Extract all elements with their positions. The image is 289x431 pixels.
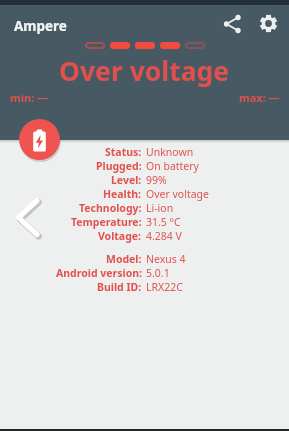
- staticText: 5.0.1: [146, 266, 170, 280]
- staticText: min: —: [10, 90, 49, 105]
- staticText: Plugged:: [96, 159, 142, 173]
- staticText: LRX22C: [146, 280, 183, 294]
- staticText: Model:: [106, 252, 142, 266]
- staticText: On battery: [146, 159, 199, 173]
- staticText: Build ID:: [97, 280, 142, 294]
- button[interactable]: [10, 193, 46, 243]
- staticText: 31.5 °C: [146, 215, 181, 229]
- staticText: Over voltage: [59, 53, 230, 89]
- staticText: Level:: [111, 173, 142, 187]
- staticText: max: —: [239, 90, 280, 105]
- staticText: Nexus 4: [146, 252, 186, 266]
- staticText: 99%: [146, 173, 167, 187]
- staticText: Health:: [103, 187, 142, 201]
- staticText: Li-ion: [146, 201, 174, 215]
- button[interactable]: [19, 119, 60, 160]
- staticText: Voltage:: [98, 229, 142, 243]
- staticText: Status:: [105, 145, 142, 159]
- staticText: Over voltage: [146, 187, 209, 201]
- staticText: Temperature:: [71, 215, 142, 229]
- staticText: Technology:: [79, 201, 142, 215]
- staticText: 4.284 V: [146, 229, 182, 243]
- button[interactable]: [221, 13, 243, 35]
- staticText: Android version:: [56, 266, 142, 280]
- button[interactable]: [258, 13, 279, 34]
- staticText: Ampere: [14, 17, 67, 35]
- staticText: Unknown: [146, 145, 194, 159]
